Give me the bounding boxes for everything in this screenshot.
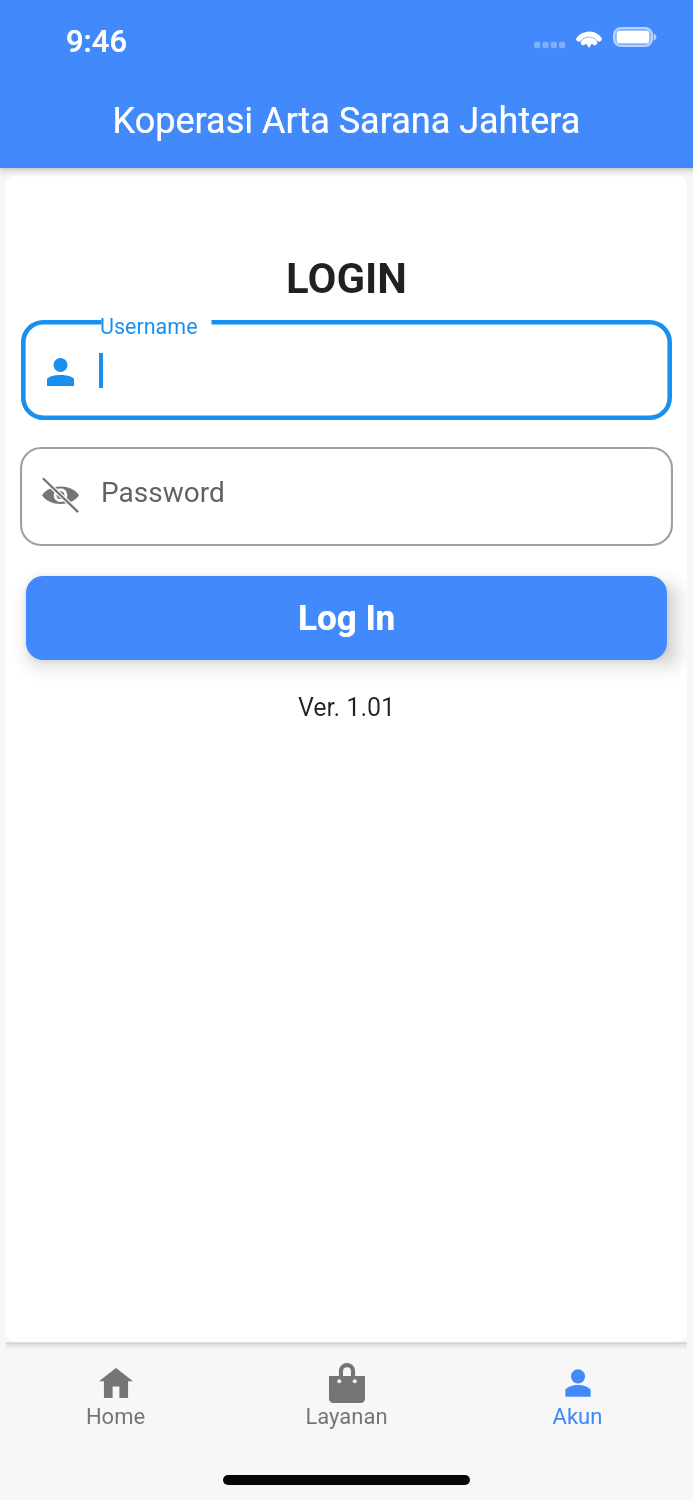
button[interactable]: Username [21, 320, 672, 420]
button[interactable]: Layanan [231, 1342, 462, 1452]
staticText: Koperasi Arta Sarana Jahtera [0, 100, 693, 142]
button[interactable]: Home [0, 1342, 231, 1452]
staticText: Akun [462, 1404, 693, 1430]
staticText: Home [0, 1404, 231, 1430]
staticText: LOGIN [6, 254, 687, 303]
staticText: Log In [298, 598, 396, 639]
staticText: Layanan [231, 1404, 462, 1430]
button[interactable]: Akun [462, 1342, 693, 1452]
staticText: Username [100, 314, 198, 339]
staticText: 9:46 [66, 23, 128, 59]
staticText: Ver. 1.01 [6, 693, 687, 722]
staticText: Password [101, 476, 225, 509]
button[interactable]: Log In [26, 576, 667, 660]
button[interactable]: Password [20, 447, 673, 546]
